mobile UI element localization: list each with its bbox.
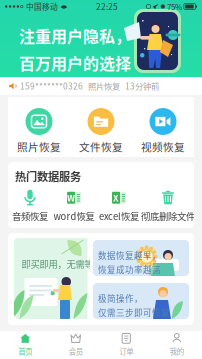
staticText: 13分钟前 bbox=[125, 80, 159, 92]
staticText: word恢复 bbox=[53, 209, 94, 223]
staticText: 恢复成功率越高 bbox=[98, 263, 161, 276]
button[interactable]: 我的 bbox=[151, 331, 202, 359]
staticText: 文件恢复 bbox=[79, 139, 123, 154]
button[interactable]: W bbox=[52, 187, 96, 225]
staticText: 我的 bbox=[170, 346, 184, 357]
button[interactable]: 音频恢复 bbox=[8, 187, 52, 225]
button[interactable]: 会员 bbox=[50, 331, 101, 359]
button[interactable]: 数据恢复越早， bbox=[93, 240, 189, 276]
staticText: 订单 bbox=[119, 346, 133, 357]
staticText: 视频恢复 bbox=[141, 139, 185, 154]
button[interactable]: 照片恢复 bbox=[8, 97, 70, 157]
button[interactable]: 即买即用，无需等待 bbox=[14, 238, 90, 319]
button[interactable]: 首页 bbox=[0, 331, 50, 359]
button[interactable]: 彻底删除文件 bbox=[142, 187, 194, 225]
button[interactable]: 订单 bbox=[101, 331, 151, 359]
staticText: 中国移动 bbox=[26, 1, 58, 12]
staticText: 极简操作， bbox=[98, 292, 143, 304]
staticText: 159*******0326 bbox=[20, 80, 83, 92]
button[interactable]: 极简操作， bbox=[93, 283, 189, 319]
staticText: excel恢复 bbox=[99, 209, 139, 223]
staticText: 照片恢复 bbox=[88, 80, 120, 92]
staticText: 会员 bbox=[69, 346, 83, 357]
staticText: X bbox=[113, 191, 119, 204]
staticText: 音频恢复 bbox=[12, 209, 48, 223]
staticText: 照片恢复 bbox=[17, 139, 61, 154]
staticText: 注重用户隐私， bbox=[19, 24, 131, 47]
staticText: 彻底删除文件 bbox=[141, 209, 195, 223]
staticText: 数据恢复越早， bbox=[98, 249, 161, 261]
button[interactable]: X bbox=[96, 187, 142, 225]
staticText: W bbox=[67, 191, 75, 204]
staticText: 仅需三步即可恢复 bbox=[98, 306, 170, 319]
button[interactable]: 视频恢复 bbox=[132, 97, 194, 157]
staticText: 22:25 bbox=[96, 0, 118, 12]
staticText: 百万用户的选择 bbox=[19, 51, 131, 74]
staticText: 首页 bbox=[18, 346, 32, 357]
staticText: 热门数据服务 bbox=[15, 168, 81, 184]
staticText: 75% bbox=[167, 1, 182, 12]
staticText: 即买即用，无需等待 bbox=[21, 257, 102, 270]
button[interactable]: 文件恢复 bbox=[70, 97, 132, 157]
